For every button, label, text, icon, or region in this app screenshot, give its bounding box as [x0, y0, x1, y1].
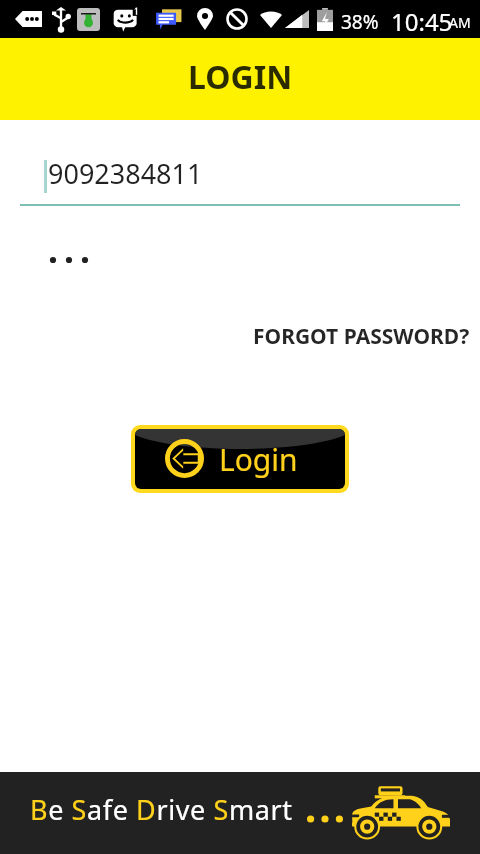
button[interactable]	[20, 230, 460, 286]
button[interactable]: FORGOT PASSWORD?	[245, 316, 478, 357]
staticText: Be Safe Drive Smart	[30, 791, 293, 828]
staticText: AM	[449, 13, 471, 32]
staticText: LOGIN	[188, 55, 293, 99]
button[interactable]: Login	[131, 425, 349, 493]
staticText: 9092384811	[48, 155, 203, 192]
staticText: 38%	[341, 9, 379, 35]
button[interactable]: 9092384811	[20, 146, 460, 206]
staticText: Login	[219, 439, 298, 480]
staticText: 10:45	[391, 5, 453, 38]
